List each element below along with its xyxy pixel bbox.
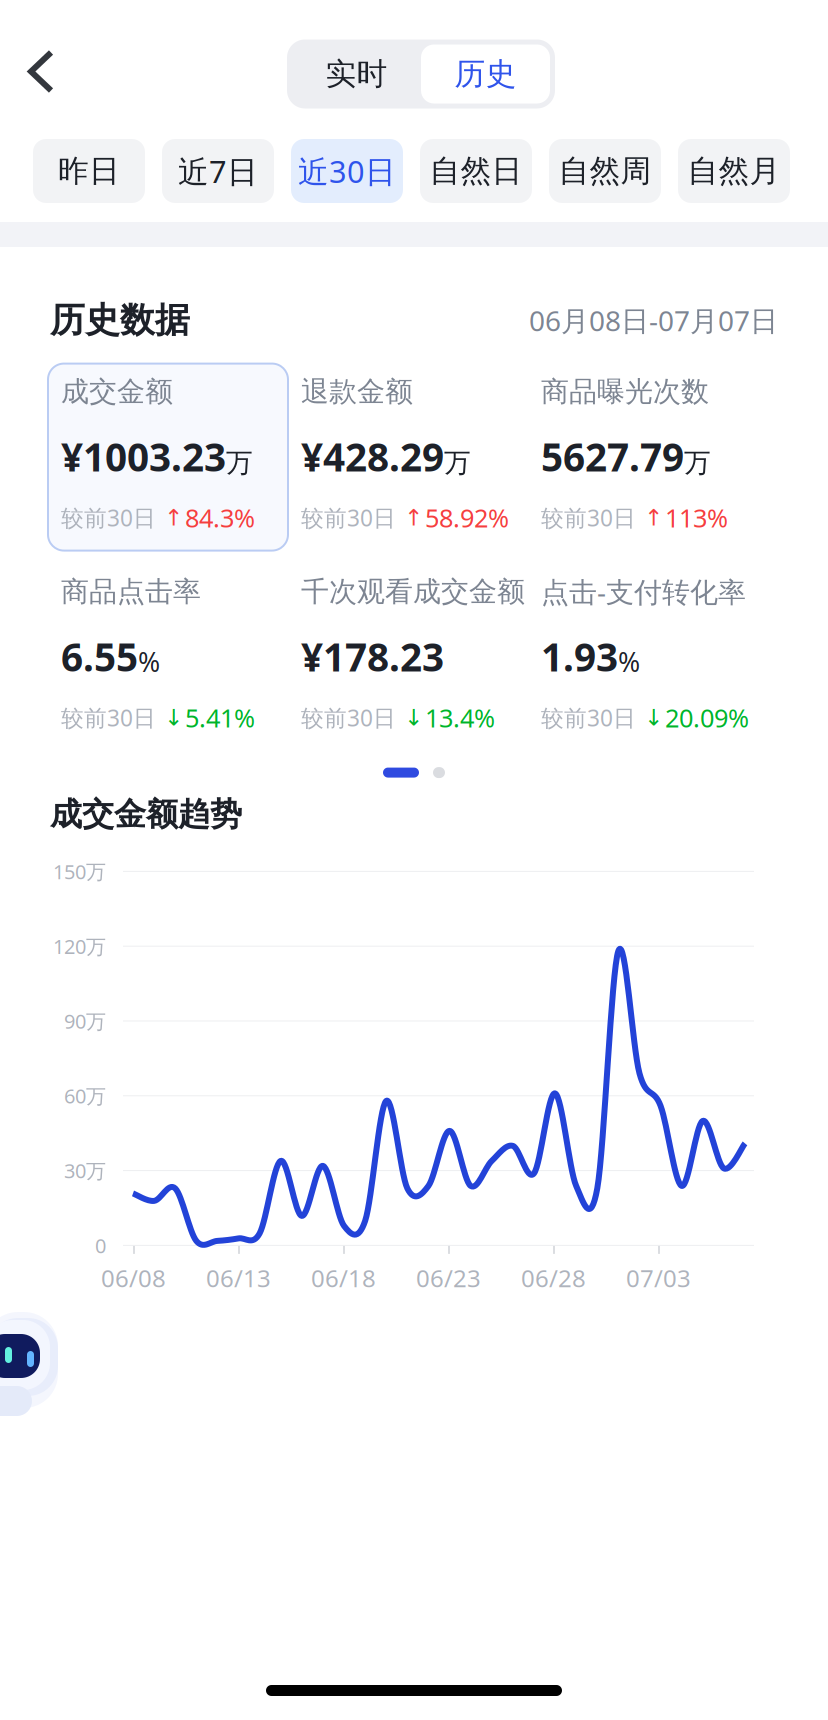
staticText: 90万 [64, 1008, 106, 1034]
button[interactable]: 自然日 [420, 139, 532, 203]
staticText: 近7日 [178, 151, 258, 191]
staticText: 历史数据 [50, 299, 190, 342]
staticText: 84.3% [185, 501, 255, 534]
staticText: 5.41% [185, 701, 255, 734]
staticText: 06月08日-07月07日 [529, 302, 778, 339]
staticText: 近30日 [298, 151, 396, 191]
staticText: ¥428.29 [301, 431, 444, 482]
button[interactable]: 商品曝光次数 [528, 364, 768, 551]
staticText: 06/13 [206, 1262, 271, 1294]
staticText: 较前30日 [61, 702, 156, 733]
staticText: 较前30日 [301, 702, 396, 733]
button[interactable]: 自然月 [678, 139, 790, 203]
staticText: 06/18 [311, 1262, 376, 1294]
staticText: % [138, 644, 160, 679]
staticText: 13.4% [425, 701, 495, 734]
staticText: 0 [95, 1232, 106, 1259]
button[interactable]: 历史 [421, 44, 550, 103]
button[interactable]: 昨日 [33, 139, 145, 203]
staticText: 5627.79 [541, 431, 684, 482]
staticText: 千次观看成交金额 [301, 574, 525, 609]
button[interactable]: 点击-支付转化率 [528, 564, 768, 751]
staticText: % [618, 644, 640, 679]
staticText: ¥1003.23 [61, 431, 226, 482]
staticText: 150万 [53, 858, 106, 885]
staticText: ↑ [644, 505, 663, 530]
staticText: 58.92% [425, 501, 509, 534]
staticText: 成交金额 [61, 374, 173, 409]
staticText: ↓ [644, 705, 663, 730]
button[interactable]: 退款金额 [288, 364, 528, 551]
button[interactable]: 商品点击率 [48, 564, 288, 751]
staticText: 20.09% [665, 701, 749, 734]
button[interactable]: 近7日 [162, 139, 274, 203]
staticText: ↓ [164, 705, 183, 730]
staticText: 07/03 [626, 1262, 691, 1294]
staticText: ¥178.23 [301, 631, 444, 682]
staticText: ↑ [164, 505, 183, 530]
button[interactable]: Back [13, 40, 69, 102]
staticText: 30万 [64, 1157, 106, 1184]
staticText: 商品曝光次数 [541, 374, 709, 409]
staticText: 历史 [454, 55, 516, 93]
staticText: 万 [444, 446, 471, 479]
staticText: 点击-支付转化率 [541, 573, 746, 610]
button[interactable]: 实时 [292, 44, 421, 103]
button[interactable]: 成交金额 [48, 364, 288, 551]
staticText: 较前30日 [541, 702, 636, 733]
staticText: 商品点击率 [61, 574, 201, 609]
staticText: 113% [665, 501, 728, 534]
staticText: 成交金额趋势 [50, 795, 242, 834]
staticText: ↓ [404, 705, 423, 730]
staticText: 自然月 [687, 152, 780, 190]
staticText: 昨日 [58, 152, 120, 190]
staticText: 万 [684, 446, 711, 479]
staticText: 退款金额 [301, 374, 413, 409]
staticText: 06/08 [101, 1262, 166, 1294]
staticText: 较前30日 [541, 502, 636, 533]
staticText: ↑ [404, 505, 423, 530]
staticText: 1.93 [541, 631, 618, 682]
staticText: 6.55 [61, 631, 138, 682]
staticText: 自然日 [429, 152, 522, 190]
staticText: 60万 [64, 1082, 106, 1109]
staticText: 较前30日 [61, 502, 156, 533]
staticText: 万 [226, 446, 253, 479]
button[interactable]: AI assistant [0, 1312, 64, 1424]
staticText: 06/28 [521, 1262, 586, 1294]
staticText: 较前30日 [301, 502, 396, 533]
staticText: 自然周 [558, 152, 651, 190]
button[interactable]: 近30日 [291, 139, 403, 203]
staticText: 实时 [325, 55, 387, 93]
button[interactable]: 自然周 [549, 139, 661, 203]
button[interactable]: 千次观看成交金额 [288, 564, 528, 751]
staticText: 120万 [53, 933, 106, 959]
staticText: 06/23 [416, 1262, 481, 1294]
